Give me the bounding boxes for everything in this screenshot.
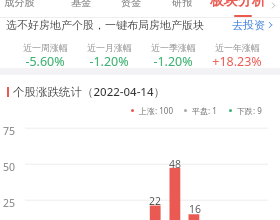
staticText: 下跌: 9 [237,105,262,116]
button[interactable]: 研报 [172,0,193,9]
button[interactable]: 成分股 [4,0,35,9]
staticText: 资金 [121,0,142,9]
staticText: 个股涨跌统计（2022-04-14） [13,84,166,100]
staticText: 近一月涨幅 [87,42,132,53]
staticText: 75 [3,124,16,138]
staticText: 22 [145,194,165,208]
staticText: 去投资 [232,18,265,32]
staticText: 研报 [172,0,193,9]
staticText: 选不好房地产个股，一键布局房地产版块 [6,18,204,32]
staticText: 近一季涨幅 [151,42,196,53]
staticText: +18.23% [212,53,262,70]
staticText: 成分股 [4,0,35,9]
staticText: 16 [185,202,205,216]
staticText: 48 [165,157,185,171]
button[interactable]: 资金 [121,0,142,9]
staticText: 50 [3,160,16,174]
staticText: 基金 [71,0,92,9]
staticText: 上涨: 100 [139,105,173,116]
button[interactable]: 板块分析 [210,0,266,10]
button[interactable]: More tabs [268,0,280,10]
staticText: 近一周涨幅 [23,42,68,53]
button[interactable]: 选不好房地产个股，一键布局房地产版块 [0,18,280,32]
staticText: -5.60% [25,53,65,70]
staticText: 板块分析 [210,0,266,10]
staticText: -1.20% [153,53,193,70]
staticText: 25 [3,196,16,210]
button[interactable]: 基金 [71,0,92,9]
staticText: 近一年涨幅 [215,42,260,53]
staticText: 平盘: 1 [192,105,217,116]
staticText: -1.20% [89,53,129,70]
